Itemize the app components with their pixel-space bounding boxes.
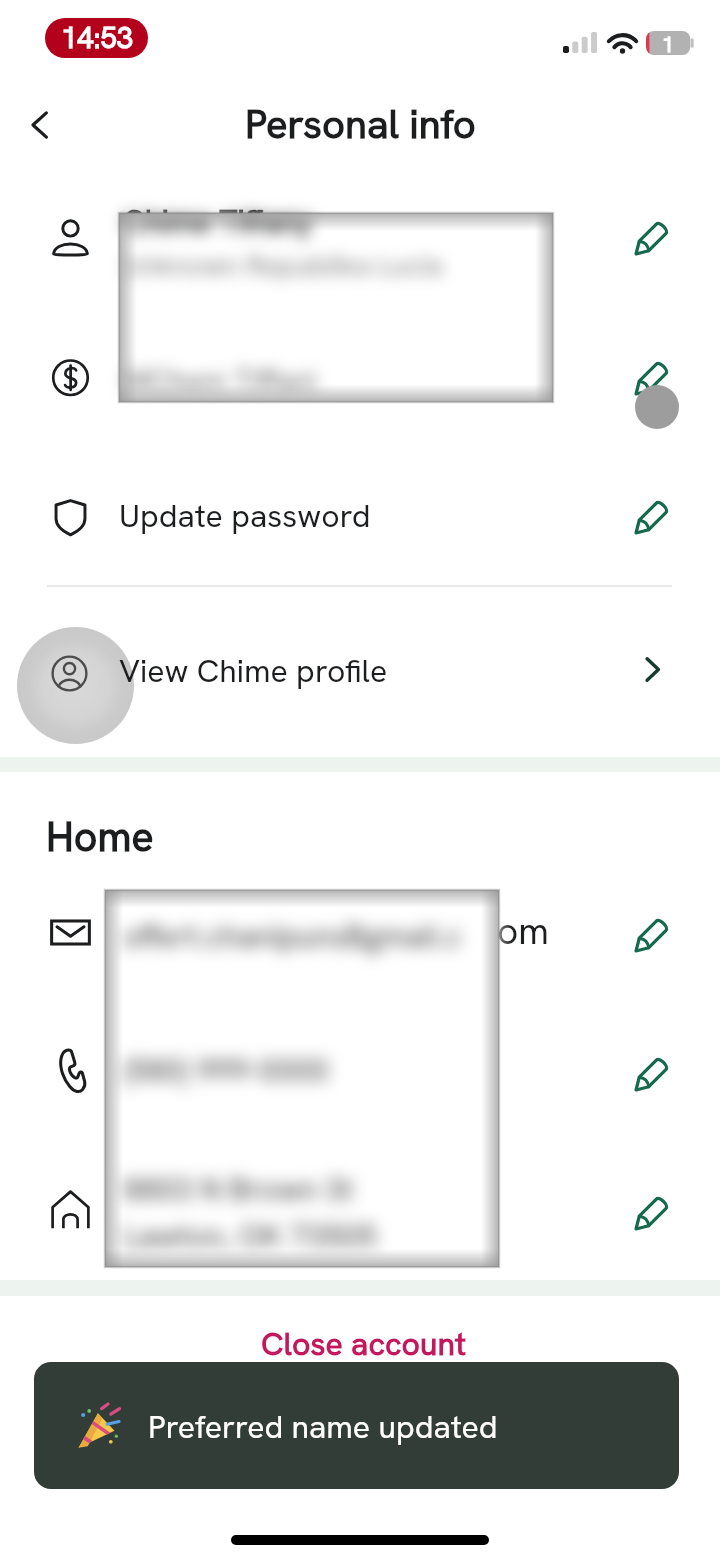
staticText: Preferred name updated [148,1406,498,1448]
staticText: MChem Tiffani [123,361,317,400]
button[interactable]: Edit [614,1036,690,1112]
staticText: View Chime profile [119,650,388,692]
staticText: 8803 N Brown St [123,1169,354,1209]
button[interactable]: Edit [614,1175,690,1251]
button[interactable]: Edit [614,340,690,416]
staticText: Home [46,810,154,863]
staticText: Lawton, OK 73505 [123,1216,377,1256]
staticText: offert.chanipunsBgmail.c [123,916,462,956]
staticText: Update password [119,495,371,537]
staticText: Unknown Republika Lucia [123,247,443,283]
staticText: Chime Tiffany [123,201,313,241]
staticText: (580) 999-0000 [123,1050,329,1090]
button[interactable]: Close account [261,1323,467,1365]
button[interactable]: Back [8,93,72,157]
staticText: Personal info [245,98,476,150]
staticText: Chime Tiffany [123,201,313,213]
staticText: 14:53 [61,19,133,57]
button[interactable]: Edit [614,200,690,276]
button[interactable]: Edit [614,897,690,973]
staticText: 1 [662,31,674,55]
button[interactable]: Edit [614,479,690,555]
staticText: om [497,907,549,955]
